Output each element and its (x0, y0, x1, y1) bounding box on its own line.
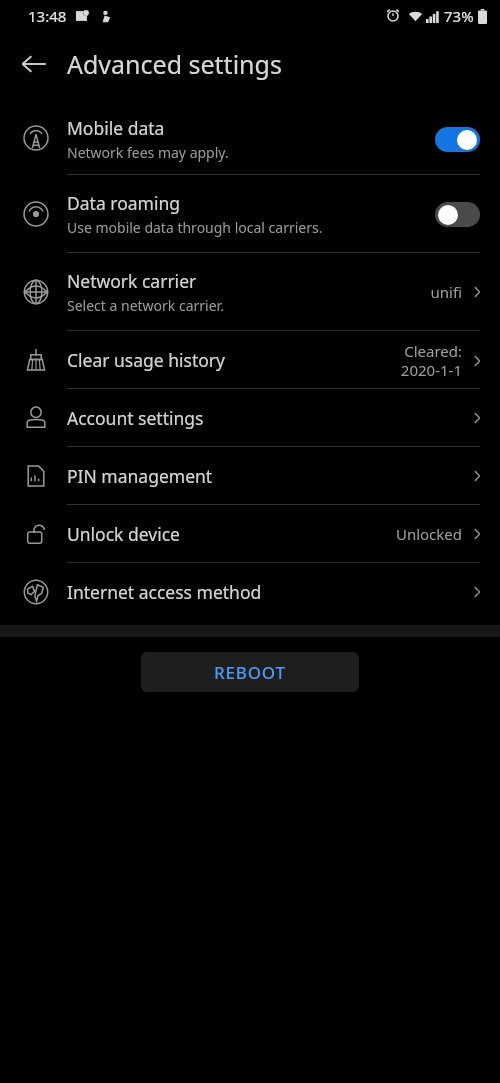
staticText: unifi (430, 282, 462, 302)
button[interactable]: Mobile data (0, 103, 500, 175)
button[interactable]: Network carrier (0, 253, 500, 331)
button[interactable]: Clear usage history (0, 331, 500, 389)
staticText: Advanced settings (67, 47, 282, 81)
button[interactable]: Data roaming (0, 175, 500, 253)
button[interactable]: PIN management (0, 447, 500, 505)
staticText: PIN management (67, 464, 213, 488)
staticText: Use mobile data through local carriers. (67, 218, 323, 237)
staticText: Clear usage history (67, 348, 226, 372)
staticText: Internet access method (67, 580, 262, 604)
staticText: Cleared: 2020-1-1 (400, 341, 462, 380)
button[interactable]: Off (435, 202, 480, 227)
staticText: Mobile data (67, 116, 165, 140)
button[interactable]: Account settings (0, 389, 500, 447)
staticText: REBOOT (214, 661, 286, 684)
staticText: Network carrier (67, 269, 197, 293)
button[interactable]: Back (12, 42, 56, 86)
button[interactable]: REBOOT (141, 652, 359, 692)
staticText: 13:48 (28, 6, 67, 26)
button[interactable]: Internet access method (0, 563, 500, 621)
staticText: Network fees may apply. (67, 143, 229, 162)
button[interactable]: On (435, 127, 480, 152)
staticText: Unlock device (67, 522, 180, 546)
button[interactable]: Unlock device (0, 505, 500, 563)
staticText: Account settings (67, 406, 204, 430)
staticText: Select a network carrier. (67, 296, 224, 315)
staticText: Unlocked (395, 524, 462, 544)
staticText: Data roaming (67, 191, 181, 215)
staticText: 73% (444, 6, 474, 26)
